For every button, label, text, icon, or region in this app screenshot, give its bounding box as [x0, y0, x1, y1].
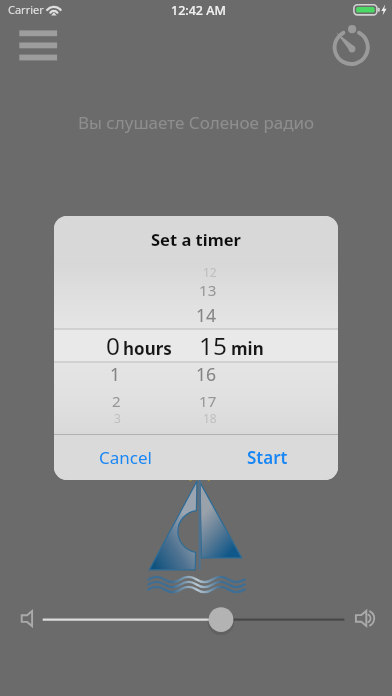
- staticText: 0: [106, 329, 120, 357]
- staticText: 12:42 AM: [171, 2, 226, 19]
- staticText: 2: [112, 391, 121, 412]
- staticText: Start: [247, 446, 288, 469]
- staticText: min: [231, 337, 264, 360]
- button[interactable]: Volume up: [348, 606, 380, 638]
- button[interactable]: Timer: [328, 22, 376, 70]
- button[interactable]: Start: [196, 435, 338, 480]
- staticText: 18: [203, 410, 217, 426]
- button[interactable]: Cancel: [54, 435, 196, 480]
- staticText: 15: [199, 329, 227, 357]
- staticText: hours: [123, 337, 172, 360]
- staticText: 3: [114, 410, 121, 426]
- staticText: 12: [203, 264, 217, 280]
- button[interactable]: Menu: [15, 24, 63, 66]
- staticText: 1: [110, 362, 121, 386]
- button[interactable]: Volume down: [14, 606, 40, 632]
- staticText: 17: [199, 391, 217, 412]
- staticText: Set a timer: [151, 228, 241, 250]
- staticText: Cancel: [99, 446, 152, 469]
- staticText: 14: [196, 303, 217, 327]
- staticText: 13: [199, 280, 217, 301]
- staticText: Carrier: [8, 2, 44, 17]
- staticText: 16: [196, 362, 217, 386]
- staticText: Вы слушаете Соленое радио: [78, 111, 315, 134]
